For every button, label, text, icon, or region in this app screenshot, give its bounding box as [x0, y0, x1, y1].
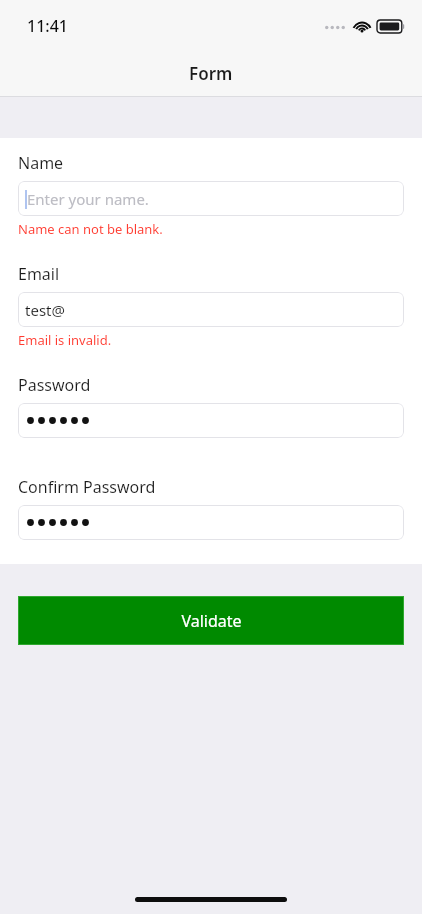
staticText: 11:41 — [27, 15, 68, 37]
other: Home indicator — [135, 897, 287, 902]
button[interactable] — [18, 505, 404, 540]
staticText: Password — [18, 374, 91, 396]
button[interactable]: Enter your name. — [18, 181, 404, 216]
staticText: Enter your name. — [27, 189, 149, 209]
staticText: Name can not be blank. — [18, 220, 163, 238]
staticText: Confirm Password — [18, 476, 156, 498]
staticText: Validate — [181, 610, 242, 632]
staticText: Name — [18, 152, 64, 174]
staticText: test@ — [25, 300, 65, 320]
button[interactable]: test@ — [18, 292, 404, 327]
button[interactable] — [18, 403, 404, 438]
staticText: Form — [189, 62, 233, 85]
staticText: Email is invalid. — [18, 331, 112, 349]
button[interactable]: Validate — [18, 596, 404, 645]
staticText: Email — [18, 263, 60, 285]
